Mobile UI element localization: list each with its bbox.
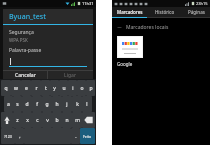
staticText: h bbox=[55, 101, 59, 108]
staticText: . bbox=[75, 133, 77, 140]
staticText: Segurança bbox=[9, 29, 34, 36]
button[interactable]: Feito bbox=[80, 128, 95, 144]
staticText: o bbox=[80, 85, 84, 92]
staticText: y bbox=[53, 85, 56, 92]
button[interactable]: h bbox=[52, 96, 62, 112]
staticText: , bbox=[19, 133, 21, 140]
staticText: j bbox=[66, 101, 68, 108]
button[interactable]: p bbox=[86, 80, 95, 96]
staticText: Histórico bbox=[155, 9, 175, 15]
button[interactable]: l bbox=[82, 96, 92, 112]
button[interactable]: u bbox=[59, 80, 68, 96]
staticText: x bbox=[26, 117, 29, 124]
staticText: c bbox=[36, 117, 39, 124]
staticText: Byuan_test bbox=[9, 12, 46, 22]
button[interactable]: w bbox=[11, 80, 21, 96]
button[interactable]: Marcadores bbox=[112, 7, 147, 18]
staticText: Ligar bbox=[64, 72, 77, 79]
staticText: k bbox=[76, 101, 79, 108]
button[interactable]: Histórico bbox=[147, 7, 183, 18]
staticText: f bbox=[36, 101, 38, 108]
button[interactable]: Páginas bbox=[183, 7, 210, 18]
staticText: l bbox=[86, 101, 88, 108]
button[interactable]: Shift bbox=[1, 112, 13, 128]
staticText: z bbox=[16, 117, 19, 124]
staticText: b bbox=[55, 117, 59, 124]
button[interactable]: o bbox=[77, 80, 86, 96]
staticText: Google bbox=[117, 61, 133, 67]
button[interactable]: z bbox=[13, 112, 22, 128]
button[interactable]: y bbox=[50, 80, 59, 96]
button[interactable]: . bbox=[71, 128, 80, 144]
button[interactable]: Google bbox=[117, 36, 143, 67]
staticText: 23h15 bbox=[196, 1, 208, 6]
staticText: q bbox=[4, 85, 8, 92]
button[interactable]: g bbox=[42, 96, 52, 112]
button[interactable]: , bbox=[15, 128, 24, 144]
button[interactable]: m bbox=[72, 112, 82, 128]
staticText: m bbox=[75, 117, 80, 124]
staticText: i bbox=[72, 85, 74, 92]
staticText: p bbox=[89, 85, 93, 92]
button[interactable]: q bbox=[1, 80, 11, 96]
button[interactable]: v bbox=[42, 112, 52, 128]
button[interactable]: i bbox=[68, 80, 77, 96]
staticText: Cancelar bbox=[15, 72, 36, 79]
button[interactable]: x bbox=[22, 112, 32, 128]
staticText: 11h31 bbox=[82, 1, 94, 6]
button[interactable]: t bbox=[41, 80, 50, 96]
button[interactable]: k bbox=[72, 96, 82, 112]
staticText: e bbox=[25, 85, 28, 92]
button[interactable]: r bbox=[31, 80, 41, 96]
staticText: u bbox=[62, 85, 66, 92]
staticText: ?123 bbox=[4, 134, 12, 139]
staticText: d bbox=[25, 101, 29, 108]
button[interactable]: j bbox=[62, 96, 72, 112]
staticText: n bbox=[65, 117, 69, 124]
staticText: Palavra-passe bbox=[9, 47, 42, 54]
staticText: v bbox=[46, 117, 49, 124]
staticText: s bbox=[16, 101, 19, 108]
button[interactable]: s bbox=[13, 96, 22, 112]
button[interactable]: ?123 bbox=[1, 128, 15, 144]
button[interactable]: e bbox=[21, 80, 31, 96]
staticText: Marcadores locais bbox=[126, 24, 169, 31]
staticText: a bbox=[7, 101, 10, 108]
staticText: g bbox=[45, 101, 49, 108]
button[interactable]: b bbox=[52, 112, 62, 128]
button[interactable]: n bbox=[62, 112, 72, 128]
staticText: w bbox=[14, 85, 18, 92]
button[interactable]: Cancelar bbox=[3, 71, 47, 79]
button[interactable]: a bbox=[4, 96, 13, 112]
button[interactable]: c bbox=[32, 112, 42, 128]
button[interactable]: f bbox=[32, 96, 42, 112]
staticText: WPA PSK bbox=[9, 37, 28, 43]
staticText: t bbox=[45, 85, 47, 92]
staticText: r bbox=[35, 85, 38, 92]
staticText: Páginas bbox=[188, 9, 205, 15]
staticText: Feito bbox=[83, 134, 92, 139]
button[interactable]: Backspace bbox=[82, 112, 95, 128]
button[interactable]: d bbox=[22, 96, 32, 112]
button[interactable]: Ligar bbox=[48, 71, 93, 79]
staticText: Marcadores bbox=[117, 9, 143, 15]
